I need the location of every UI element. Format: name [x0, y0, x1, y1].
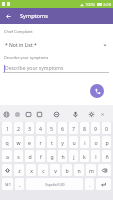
button[interactable]: ñ	[102, 150, 111, 162]
staticText: Español (US)	[45, 182, 65, 186]
button[interactable]: f	[36, 150, 45, 162]
button[interactable]: x	[26, 164, 36, 176]
button[interactable]: g	[47, 150, 56, 162]
staticText: m	[89, 167, 94, 174]
staticText: ñ	[105, 153, 109, 160]
staticText: r	[39, 139, 42, 146]
button[interactable]: Shift	[2, 164, 12, 176]
staticText: .	[89, 181, 91, 188]
button[interactable]: 0	[102, 122, 111, 134]
button[interactable]: v	[50, 164, 60, 176]
staticText: g	[50, 153, 54, 160]
button[interactable]: ,	[15, 178, 24, 190]
staticText: 100%	[85, 2, 96, 7]
button[interactable]: 8	[80, 122, 89, 134]
button[interactable]: Sticker	[34, 109, 44, 119]
button[interactable]: 6	[58, 122, 67, 134]
button[interactable]: d	[25, 150, 34, 162]
button[interactable]: t	[47, 136, 56, 148]
button[interactable]: GIF	[23, 109, 33, 119]
button[interactable]: Backspace	[98, 164, 111, 176]
staticText: !#1	[5, 182, 11, 187]
staticText: 1	[6, 125, 9, 132]
button[interactable]: 5	[47, 122, 56, 134]
button[interactable]: q	[2, 136, 12, 148]
button[interactable]: y	[58, 136, 67, 148]
button[interactable]: Emoji	[12, 109, 22, 119]
button[interactable]: 7	[69, 122, 78, 134]
button[interactable]: .	[85, 178, 94, 190]
staticText: a	[6, 153, 9, 160]
button[interactable]: s	[14, 150, 23, 162]
staticText: i	[84, 139, 86, 146]
button[interactable]: 4	[36, 122, 45, 134]
button[interactable]: h	[58, 150, 67, 162]
staticText: 3	[28, 125, 31, 132]
staticText: j	[73, 153, 75, 160]
button[interactable]: r	[36, 136, 45, 148]
button[interactable]: Translate	[51, 109, 61, 119]
staticText: l	[95, 153, 97, 160]
button[interactable]: 2	[14, 122, 23, 134]
staticText: o	[94, 139, 98, 146]
button[interactable]: b	[62, 164, 72, 176]
staticText: 4	[39, 125, 42, 132]
staticText: ,	[19, 181, 21, 188]
button[interactable]: 9	[91, 122, 100, 134]
button[interactable]: o	[91, 136, 100, 148]
staticText: p	[105, 139, 109, 146]
staticText: s	[17, 153, 20, 160]
staticText: w	[16, 139, 21, 146]
button[interactable]: Enter	[96, 178, 111, 190]
button[interactable]: l	[91, 150, 100, 162]
button[interactable]: z	[14, 164, 24, 176]
button[interactable]: Voice input	[70, 109, 80, 119]
staticText: z	[18, 167, 21, 174]
staticText: n	[77, 167, 81, 174]
button[interactable]: n	[74, 164, 84, 176]
staticText: 0	[105, 125, 108, 132]
button[interactable]: p	[102, 136, 111, 148]
staticText: x	[30, 167, 33, 174]
staticText: 2	[17, 125, 20, 132]
button[interactable]: Search	[1, 109, 11, 119]
button[interactable]: k	[80, 150, 89, 162]
button[interactable]: w	[14, 136, 23, 148]
staticText: k	[83, 153, 86, 160]
button[interactable]: Close toolbar	[97, 109, 107, 119]
staticText: u	[72, 139, 76, 146]
staticText: c	[42, 167, 45, 174]
button[interactable]: u	[69, 136, 78, 148]
staticText: 7	[72, 125, 75, 132]
button[interactable]: Call	[90, 84, 104, 98]
button[interactable]: m	[86, 164, 96, 176]
staticText: 9	[94, 125, 97, 132]
staticText: 8	[83, 125, 86, 132]
staticText: Chief Complaint	[4, 29, 33, 34]
staticText: 3:08	[103, 2, 111, 7]
staticText: b	[65, 167, 69, 174]
staticText: * Not in List *	[5, 42, 103, 49]
staticText: Describe your symptoms	[4, 55, 49, 60]
staticText: q	[5, 139, 9, 146]
staticText: h	[61, 153, 65, 160]
button[interactable]: e	[25, 136, 34, 148]
staticText: d	[28, 153, 32, 160]
button[interactable]: Back	[0, 8, 16, 24]
staticText: e	[28, 139, 31, 146]
button[interactable]: Español (US)	[26, 178, 83, 190]
button[interactable]: 1	[2, 122, 12, 134]
staticText: Describe your symptoms	[5, 65, 64, 72]
button[interactable]: i	[80, 136, 89, 148]
staticText: 5	[50, 125, 53, 132]
button[interactable]: !#1	[2, 178, 13, 190]
button[interactable]: 3	[25, 122, 34, 134]
staticText: v	[54, 167, 57, 174]
button[interactable]: a	[2, 150, 12, 162]
button[interactable]: Settings	[86, 109, 96, 119]
button[interactable]: * Not in List *	[5, 40, 107, 50]
button[interactable]: c	[38, 164, 48, 176]
staticText: 6	[61, 125, 64, 132]
button[interactable]: j	[69, 150, 78, 162]
staticText: f	[40, 153, 42, 160]
